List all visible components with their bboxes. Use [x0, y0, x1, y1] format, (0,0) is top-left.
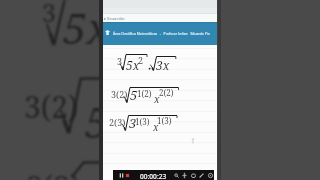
staticText: 3: [42, 0, 56, 29]
button[interactable]: Search: [172, 171, 181, 180]
staticText: 1(3): [135, 116, 150, 127]
button[interactable]: Pause: [117, 171, 126, 180]
staticText: 1(3): [157, 115, 172, 126]
button[interactable]: Draw: [197, 171, 206, 180]
staticText: 00:00:23: [140, 172, 167, 180]
staticText: 5x: [63, 0, 110, 56]
staticText: 5x: [126, 57, 140, 73]
button[interactable]: Área Científica Matemáticas - Profesor I…: [103, 22, 217, 45]
button[interactable]: Stop: [123, 171, 132, 180]
staticText: 2(3): [109, 116, 126, 128]
staticText: Área Científica Matemáticas - Profesor I…: [113, 31, 210, 36]
staticText: 2(3): [26, 166, 81, 180]
staticText: 1(2): [137, 88, 152, 99]
button[interactable]: Crop: [189, 171, 198, 180]
staticText: 3(2): [24, 86, 79, 127]
staticText: 5: [130, 86, 138, 104]
staticText: x: [154, 92, 160, 106]
staticText: 5: [85, 93, 109, 150]
staticText: x: [153, 120, 159, 134]
staticText: 2(2): [159, 87, 174, 98]
staticText: 3: [117, 55, 123, 67]
staticText: 3: [129, 114, 137, 132]
staticText: 3(2): [111, 88, 128, 100]
staticText: ▸ Ecuación: [104, 16, 125, 22]
button[interactable]: Resize: [180, 171, 189, 180]
button[interactable]: Settings: [206, 171, 215, 180]
staticText: 2: [138, 54, 144, 66]
staticText: 3x: [156, 57, 170, 73]
